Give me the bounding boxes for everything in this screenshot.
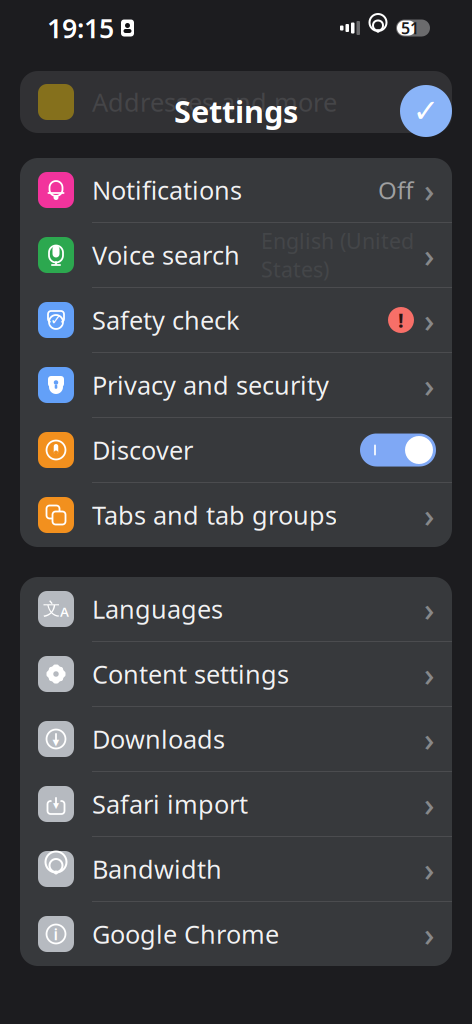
staticText: 19:15: [47, 10, 114, 46]
staticText: ›: [424, 494, 434, 536]
button[interactable]: Done: [400, 85, 452, 137]
button[interactable]: Notifications: [20, 158, 452, 222]
staticText: Notifications: [92, 173, 242, 207]
staticText: Safety check: [92, 303, 240, 337]
staticText: Languages: [92, 592, 223, 626]
staticText: ›: [424, 588, 434, 630]
staticText: Bandwidth: [92, 852, 222, 886]
button[interactable]: 🔥: [20, 418, 452, 482]
button[interactable]: ▾: [20, 772, 452, 836]
staticText: Safari import: [92, 787, 248, 821]
staticText: ▾: [53, 798, 59, 812]
staticText: Addresses and more: [92, 85, 337, 119]
button[interactable]: Privacy and security: [20, 353, 452, 417]
button[interactable]: Bandwidth: [20, 837, 452, 901]
staticText: ▾: [52, 734, 59, 749]
staticText: i: [53, 923, 58, 945]
staticText: Off: [378, 174, 414, 206]
staticText: ›: [424, 299, 434, 341]
staticText: ›: [424, 718, 434, 760]
button[interactable]: ▾: [20, 707, 452, 771]
staticText: A: [60, 603, 69, 620]
staticText: 文: [43, 598, 60, 620]
button[interactable]: 文: [20, 577, 452, 641]
staticText: ›: [424, 653, 434, 695]
staticText: ›: [424, 783, 434, 825]
button[interactable]: Content settings: [20, 642, 452, 706]
staticText: Privacy and security: [92, 368, 329, 402]
staticText: ›: [424, 364, 434, 406]
staticText: ✓: [412, 93, 439, 129]
staticText: ›: [424, 169, 434, 211]
button[interactable]: Voice search: [20, 223, 452, 287]
staticText: Content settings: [92, 657, 289, 691]
staticText: Voice search: [92, 238, 240, 272]
staticText: ›: [424, 848, 434, 890]
staticText: Discover: [92, 433, 193, 467]
button[interactable]: i: [20, 902, 452, 966]
button[interactable]: ✓: [20, 288, 452, 352]
staticText: English (United States): [261, 227, 414, 283]
staticText: Settings: [174, 91, 298, 131]
button[interactable]: Tabs and tab groups: [20, 483, 452, 547]
staticText: Downloads: [92, 722, 225, 756]
staticText: ✓: [50, 311, 62, 328]
staticText: 51: [401, 17, 419, 39]
staticText: ›: [424, 913, 434, 955]
staticText: Google Chrome: [92, 917, 279, 951]
staticText: ›: [424, 234, 434, 276]
staticText: Tabs and tab groups: [92, 498, 337, 532]
staticText: !: [398, 307, 404, 333]
